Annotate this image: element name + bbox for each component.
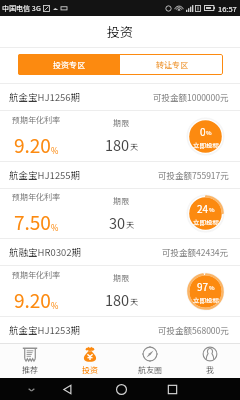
- button[interactable]: 97: [187, 273, 224, 310]
- other: Back: [61, 383, 74, 396]
- staticText: 9.20: [14, 286, 51, 314]
- staticText: 期限: [113, 195, 129, 207]
- other: Home: [115, 383, 128, 396]
- staticText: 立即投标: [193, 140, 219, 149]
- staticText: 航金宝HJ1253期: [9, 323, 81, 337]
- staticText: 天: [130, 296, 138, 308]
- other: Hide keyboard: [25, 383, 38, 396]
- staticText: 24: [197, 201, 209, 215]
- staticText: 预期年化利率: [12, 191, 60, 203]
- staticText: 航金宝HJ1255期: [9, 168, 81, 182]
- staticText: 天: [126, 219, 134, 231]
- staticText: 期限: [113, 272, 129, 284]
- staticText: %: [51, 145, 59, 157]
- staticText: 预期年化利率: [12, 269, 60, 281]
- staticText: 投资专区: [53, 59, 85, 71]
- staticText: 我: [206, 364, 214, 376]
- staticText: 30: [109, 212, 126, 233]
- button[interactable]: 投资: [60, 344, 120, 378]
- button[interactable]: 0: [187, 118, 224, 155]
- staticText: %: [206, 128, 212, 137]
- staticText: 立即投标: [193, 295, 219, 304]
- staticText: 16:57: [218, 3, 237, 14]
- staticText: 天: [130, 141, 138, 153]
- staticText: %: [209, 283, 215, 292]
- staticText: 97: [197, 279, 209, 293]
- button[interactable]: 航金宝HJ1255期: [0, 162, 240, 238]
- staticText: 180: [105, 289, 130, 310]
- staticText: 0: [200, 124, 206, 138]
- staticText: 3G: [32, 3, 41, 13]
- button[interactable]: 航融宝HR0302期: [0, 239, 240, 316]
- button[interactable]: 航金宝HJ1256期: [0, 84, 240, 161]
- button[interactable]: 我: [180, 344, 240, 378]
- staticText: 可投金额755917元: [158, 169, 229, 181]
- staticText: 转让专区: [156, 59, 188, 71]
- staticText: 9.20: [14, 131, 51, 159]
- staticText: 预期年化利率: [12, 114, 60, 126]
- staticText: 中国电信: [2, 3, 30, 13]
- staticText: 期限: [113, 117, 129, 129]
- button[interactable]: 投资专区: [18, 54, 120, 75]
- staticText: 可投金额1000000元: [153, 91, 229, 103]
- other: Recent apps: [166, 383, 179, 396]
- button[interactable]: 航金宝HJ1253期: [0, 317, 240, 343]
- staticText: 推荐: [22, 364, 38, 376]
- button[interactable]: 转让专区: [120, 54, 223, 75]
- staticText: %: [209, 205, 215, 214]
- staticText: 航金宝HJ1256期: [9, 90, 81, 104]
- staticText: 航融宝HR0302期: [9, 245, 82, 259]
- button[interactable]: 推荐: [0, 344, 60, 378]
- staticText: 可投金额42434元: [162, 246, 229, 258]
- staticText: 180: [105, 134, 130, 155]
- staticText: 立即投标: [193, 217, 219, 226]
- staticText: %: [51, 300, 59, 312]
- staticText: 投资: [107, 22, 134, 41]
- button[interactable]: 24: [187, 195, 224, 232]
- staticText: %: [51, 222, 59, 234]
- staticText: 7.50: [14, 208, 51, 236]
- staticText: 投资: [82, 364, 98, 376]
- button[interactable]: 航友圈: [120, 344, 180, 378]
- staticText: 航友圈: [138, 364, 162, 376]
- staticText: 可投金额568000元: [158, 324, 229, 336]
